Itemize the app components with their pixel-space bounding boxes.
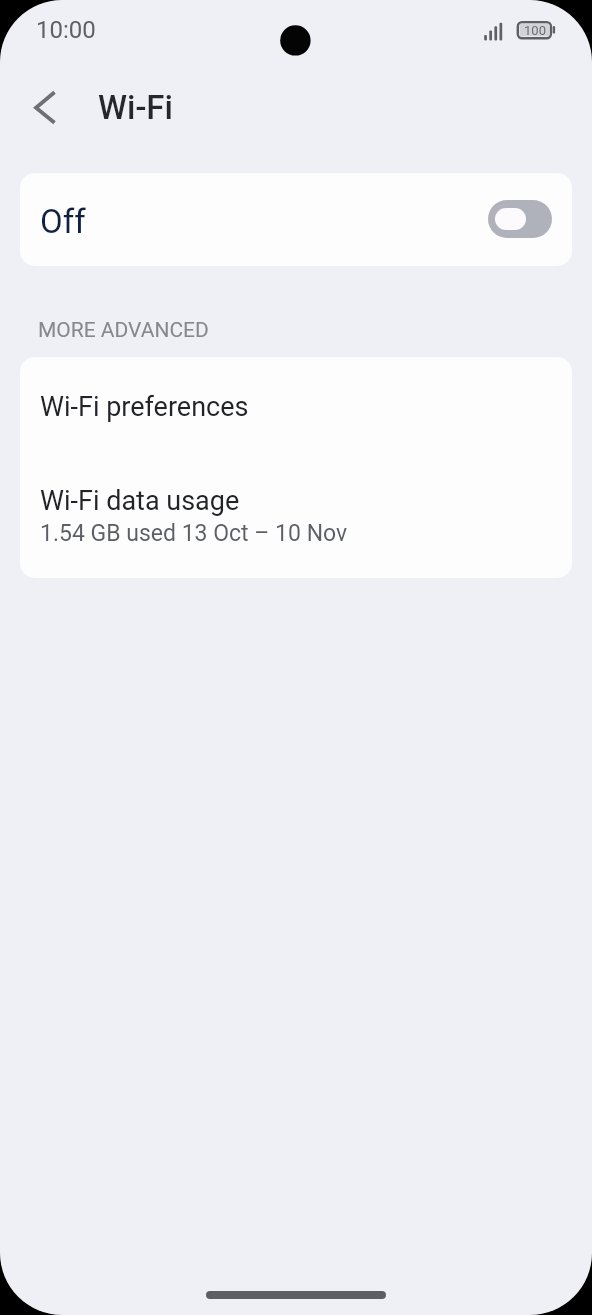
staticText: 10:00 [36, 16, 96, 44]
staticText: Wi-Fi data usage [40, 485, 240, 517]
staticText: Off [40, 202, 86, 241]
button[interactable]: Off [20, 173, 572, 266]
staticText: Wi-Fi [98, 88, 173, 127]
button[interactable]: Wi-Fi data usage [20, 451, 572, 578]
button[interactable]: Back [19, 81, 72, 134]
staticText: Wi-Fi preferences [40, 391, 249, 423]
staticText: 100 [521, 23, 549, 38]
staticText: MORE ADVANCED [38, 318, 209, 343]
button[interactable]: Wi-Fi on/off switch [488, 200, 552, 238]
staticText: 1.54 GB used 13 Oct – 10 Nov [40, 520, 348, 547]
button[interactable]: Wi-Fi preferences [20, 357, 572, 451]
